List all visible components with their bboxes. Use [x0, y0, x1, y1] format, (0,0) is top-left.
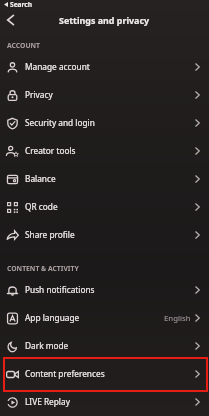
- button[interactable]: LIVE Replay: [0, 388, 209, 416]
- staticText: Security and login: [25, 117, 95, 128]
- staticText: Content preferences: [25, 368, 105, 379]
- button[interactable]: Security and login: [0, 109, 209, 137]
- staticText: Share profile: [25, 229, 75, 240]
- staticText: LIVE Replay: [25, 396, 70, 407]
- staticText: Dark mode: [25, 340, 69, 351]
- button[interactable]: Creator tools: [0, 137, 209, 165]
- button[interactable]: QR code: [0, 193, 209, 221]
- staticText: Privacy: [25, 89, 53, 100]
- staticText: App language: [25, 312, 80, 323]
- button[interactable]: App language: [0, 304, 209, 332]
- staticText: Search: [10, 0, 33, 9]
- staticText: Manage account: [25, 61, 90, 72]
- staticText: CONTENT & ACTIVITY: [7, 264, 79, 273]
- button[interactable]: Push notifications: [0, 276, 209, 304]
- button[interactable]: Back: [1, 10, 20, 29]
- staticText: QR code: [25, 201, 58, 212]
- button[interactable]: Content preferences: [0, 360, 209, 388]
- button[interactable]: Manage account: [0, 53, 209, 81]
- staticText: English: [164, 313, 191, 324]
- staticText: Push notifications: [25, 284, 95, 295]
- button[interactable]: Privacy: [0, 81, 209, 109]
- button[interactable]: Dark mode: [0, 332, 209, 360]
- staticText: Settings and privacy: [59, 14, 150, 26]
- button[interactable]: Share profile: [0, 221, 209, 249]
- button[interactable]: Balance: [0, 165, 209, 193]
- staticText: ACCOUNT: [7, 41, 40, 50]
- staticText: Balance: [25, 173, 56, 184]
- staticText: Creator tools: [25, 145, 76, 156]
